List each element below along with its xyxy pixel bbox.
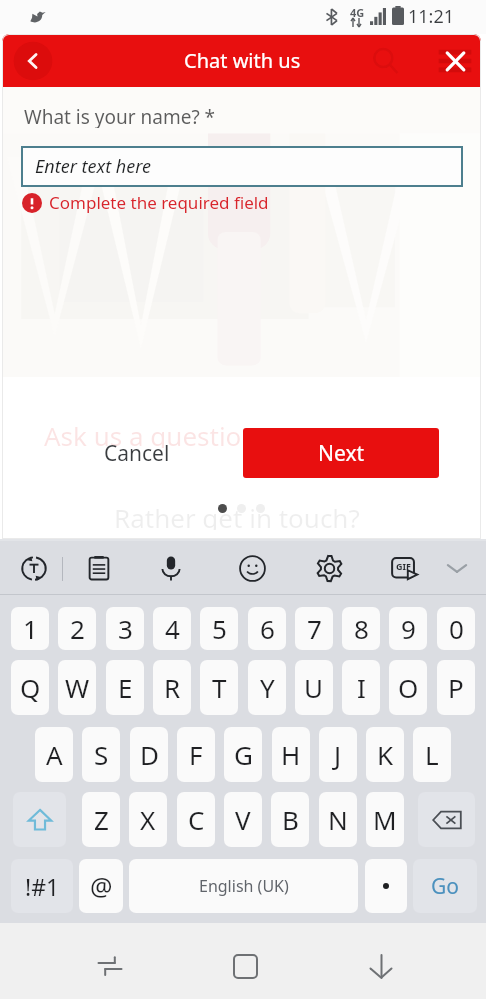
staticText: !#1 xyxy=(25,871,60,902)
staticText: 2 xyxy=(70,611,85,646)
button[interactable]: E xyxy=(106,660,144,715)
staticText: 3 xyxy=(118,611,133,646)
staticText: Rather get in touch? xyxy=(114,500,360,530)
staticText: U xyxy=(304,670,324,705)
button[interactable]: Y xyxy=(248,660,286,715)
button[interactable]: W xyxy=(58,660,96,715)
button[interactable]: Clipboard xyxy=(72,541,126,595)
button[interactable]: H xyxy=(272,727,310,782)
button[interactable]: 0 xyxy=(437,607,475,650)
button[interactable]: T xyxy=(200,660,238,715)
button[interactable]: Z xyxy=(82,792,120,847)
button[interactable]: 6 xyxy=(248,607,286,650)
staticText: 1 xyxy=(23,611,38,646)
button[interactable]: O xyxy=(389,660,427,715)
button[interactable]: Translate xyxy=(6,541,62,595)
button[interactable]: A xyxy=(35,727,73,782)
button[interactable]: Search xyxy=(359,34,413,87)
button[interactable]: Full stop xyxy=(365,859,407,913)
button[interactable]: Home xyxy=(221,942,269,990)
button[interactable]: @ xyxy=(79,859,123,913)
button[interactable]: Backspace xyxy=(418,792,475,847)
staticText: L xyxy=(425,737,439,772)
button[interactable]: Shift xyxy=(13,792,66,847)
staticText: P xyxy=(448,670,464,705)
button[interactable]: English (UK) xyxy=(129,859,358,913)
button[interactable]: U xyxy=(295,660,333,715)
staticText: Z xyxy=(94,802,109,837)
staticText: 4 xyxy=(165,611,180,646)
button[interactable]: B xyxy=(271,792,309,847)
button[interactable]: X xyxy=(129,792,167,847)
button[interactable]: 4 xyxy=(153,607,191,650)
staticText: S xyxy=(94,737,109,772)
button[interactable]: Voice input xyxy=(144,541,198,595)
staticText: D xyxy=(140,737,159,772)
staticText: W xyxy=(65,670,90,705)
button[interactable]: 9 xyxy=(389,607,427,650)
staticText: 4G xyxy=(350,5,365,20)
button[interactable]: V xyxy=(224,792,262,847)
staticText: Y xyxy=(260,670,275,705)
staticText: 6 xyxy=(260,611,275,646)
button[interactable]: Back xyxy=(10,38,56,84)
staticText: GIF xyxy=(396,560,411,572)
button[interactable]: P xyxy=(437,660,475,715)
staticText: M xyxy=(373,802,397,837)
staticText: G xyxy=(234,737,253,772)
button[interactable]: GIF xyxy=(378,541,432,595)
button[interactable]: 3 xyxy=(106,607,144,650)
button[interactable]: Collapse toolbar xyxy=(432,541,482,595)
button[interactable]: Close chat xyxy=(428,34,481,87)
staticText: A xyxy=(46,737,63,772)
button[interactable]: Q xyxy=(11,660,49,715)
staticText: K xyxy=(377,737,394,772)
button[interactable]: 7 xyxy=(295,607,333,650)
button[interactable]: D xyxy=(130,727,168,782)
button[interactable]: R xyxy=(153,660,191,715)
staticText: Next xyxy=(318,439,365,468)
button[interactable]: 8 xyxy=(342,607,380,650)
staticText: F xyxy=(189,737,203,772)
button[interactable]: Go xyxy=(413,859,477,913)
staticText: T xyxy=(212,670,227,705)
button[interactable]: M xyxy=(366,792,404,847)
staticText: @ xyxy=(90,869,113,903)
button[interactable]: S xyxy=(82,727,120,782)
button[interactable]: Hide keyboard xyxy=(357,942,405,990)
staticText: H xyxy=(281,737,301,772)
staticText: X xyxy=(140,802,156,837)
staticText: What is your name? * xyxy=(24,104,216,128)
button[interactable]: Settings xyxy=(302,541,356,595)
button[interactable]: !#1 xyxy=(11,859,73,913)
staticText: O xyxy=(398,670,419,705)
staticText: V xyxy=(235,802,251,837)
staticText: 5 xyxy=(212,611,227,646)
button[interactable]: F xyxy=(177,727,215,782)
button[interactable]: J xyxy=(319,727,357,782)
staticText: E xyxy=(118,670,133,705)
button[interactable]: Cancel xyxy=(76,428,198,478)
button[interactable]: 1 xyxy=(11,607,49,650)
button[interactable]: L xyxy=(413,727,451,782)
staticText: Enter text here xyxy=(35,154,151,179)
button[interactable]: Emoji xyxy=(225,541,279,595)
button[interactable]: Next xyxy=(243,428,439,478)
button[interactable]: 5 xyxy=(200,607,238,650)
staticText: 9 xyxy=(401,611,416,646)
staticText: English (UK) xyxy=(199,875,289,897)
staticText: Cancel xyxy=(104,439,170,468)
button[interactable]: I xyxy=(342,660,380,715)
button[interactable]: G xyxy=(224,727,262,782)
staticText: J xyxy=(334,737,342,772)
button[interactable]: Recent apps xyxy=(86,942,134,990)
button[interactable]: 2 xyxy=(58,607,96,650)
button[interactable]: N xyxy=(319,792,357,847)
staticText: B xyxy=(282,802,299,837)
staticText: Chat with us xyxy=(184,47,301,74)
staticText: R xyxy=(164,670,181,705)
button[interactable]: C xyxy=(177,792,215,847)
button[interactable]: Enter text here xyxy=(21,146,463,187)
staticText: Complete the required field xyxy=(49,191,269,214)
button[interactable]: K xyxy=(366,727,404,782)
